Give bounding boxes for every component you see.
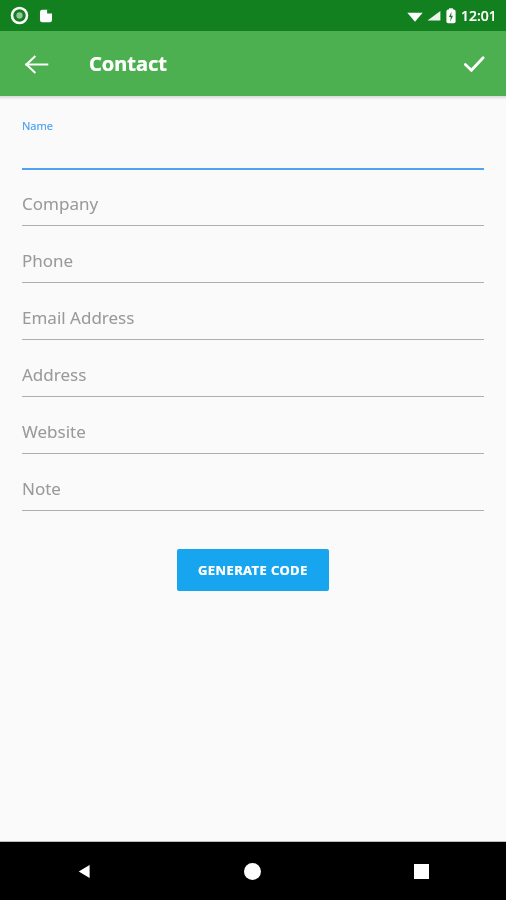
button[interactable]: Company <box>0 192 506 226</box>
button[interactable]: GENERATE CODE <box>177 549 329 591</box>
staticText: Name <box>22 118 54 133</box>
button[interactable]: Address <box>0 363 506 397</box>
staticText: 12:01 <box>461 6 497 25</box>
staticText: Website <box>22 420 86 443</box>
staticText: Email Address <box>22 306 135 329</box>
button[interactable]: Back <box>12 40 60 88</box>
staticText: Contact <box>89 50 167 77</box>
button[interactable]: Website <box>0 420 506 454</box>
button[interactable]: Home <box>168 842 337 900</box>
button[interactable]: Save <box>450 40 498 88</box>
button[interactable]: Phone <box>0 249 506 283</box>
button[interactable]: Note <box>0 477 506 511</box>
staticText: Address <box>22 363 87 386</box>
staticText: Phone <box>22 249 74 272</box>
button[interactable]: Back <box>0 842 168 900</box>
staticText: Note <box>22 477 61 500</box>
button[interactable]: Recent apps <box>337 842 506 900</box>
staticText: Company <box>22 192 99 215</box>
staticText: GENERATE CODE <box>198 561 308 579</box>
button[interactable]: Email Address <box>0 306 506 340</box>
button[interactable]: Name <box>0 118 506 170</box>
